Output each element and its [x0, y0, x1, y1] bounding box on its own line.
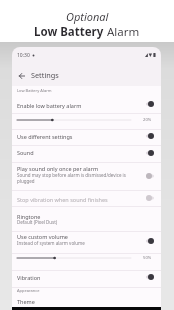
button[interactable]: [12, 97, 161, 113]
staticText: 50%: [143, 255, 152, 261]
staticText: Appearance: [17, 288, 40, 293]
staticText: Settings: [31, 70, 59, 80]
staticText: Sound may stop before alarm is dismissed…: [17, 172, 130, 185]
staticText: Optional: [66, 9, 109, 24]
button[interactable]: [12, 145, 161, 162]
staticText: Instead of system alarm volume: [17, 240, 130, 246]
staticText: Use custom volume: [17, 233, 130, 240]
staticText: Ringtone: [17, 213, 130, 220]
button[interactable]: 50%: [12, 252, 161, 264]
button[interactable]: [12, 270, 161, 287]
staticText: Play sound only once per alarm: [17, 165, 130, 172]
staticText: 10:30: [17, 52, 30, 59]
staticText: Low Battery Alarm: [17, 88, 52, 93]
button[interactable]: [12, 296, 161, 307]
staticText: 20%: [143, 117, 152, 123]
staticText: Enable low battery alarm: [17, 102, 130, 109]
staticText: Theme: [17, 298, 130, 305]
button[interactable]: [12, 206, 161, 231]
staticText: Alarm: [107, 24, 140, 40]
staticText: Stop vibration when sound finishes: [17, 196, 130, 203]
button[interactable]: [12, 231, 161, 253]
button[interactable]: [12, 162, 161, 190]
staticText: Default (Pixel Dust): [17, 219, 130, 225]
staticText: Low Battery: [34, 24, 107, 40]
button[interactable]: [12, 190, 161, 206]
staticText: Use different settings: [17, 133, 130, 140]
staticText: Vibration: [17, 274, 130, 281]
button[interactable]: [12, 129, 161, 146]
staticText: Sound: [17, 149, 130, 156]
button[interactable]: Back: [15, 69, 29, 83]
button[interactable]: 20%: [12, 114, 161, 126]
